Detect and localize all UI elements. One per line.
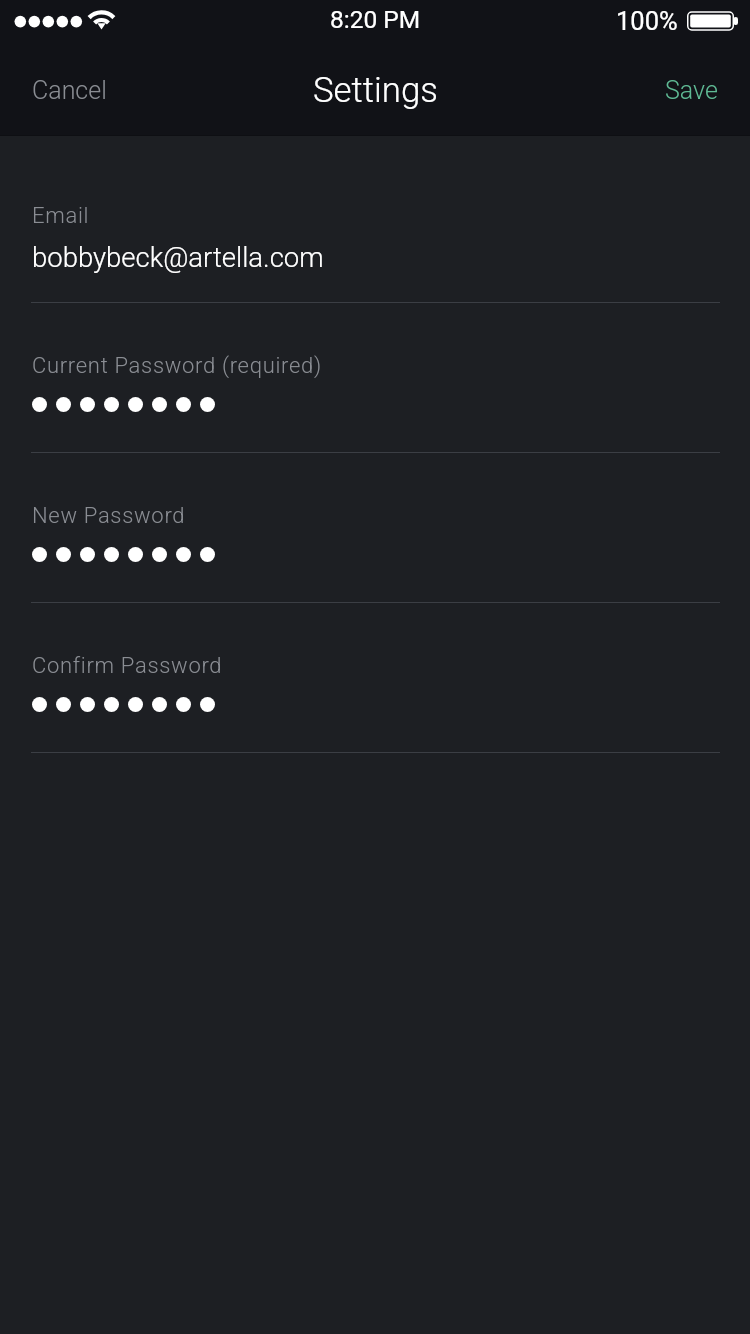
staticText: Save: [665, 76, 718, 105]
other: Battery 100 percent: [687, 11, 740, 31]
button[interactable]: Email: [0, 153, 750, 303]
button[interactable]: New Password: [0, 453, 750, 603]
staticText: bobbybeck@artella.com: [32, 241, 324, 273]
staticText: Confirm Password: [32, 653, 223, 679]
button[interactable]: Save: [641, 49, 750, 132]
staticText: Settings: [313, 70, 438, 111]
button[interactable]: Cancel: [0, 49, 131, 132]
staticText: 100%: [616, 6, 678, 36]
staticText: Cancel: [32, 76, 107, 105]
button[interactable]: Confirm Password: [0, 603, 750, 753]
staticText: New Password: [32, 503, 186, 529]
staticText: 8:20 PM: [330, 5, 421, 34]
staticText: Current Password (required): [32, 353, 322, 379]
button[interactable]: Current Password (required): [0, 303, 750, 453]
staticText: Email: [32, 203, 90, 229]
other: Signal strength and Wi-Fi: [0, 0, 120, 43]
